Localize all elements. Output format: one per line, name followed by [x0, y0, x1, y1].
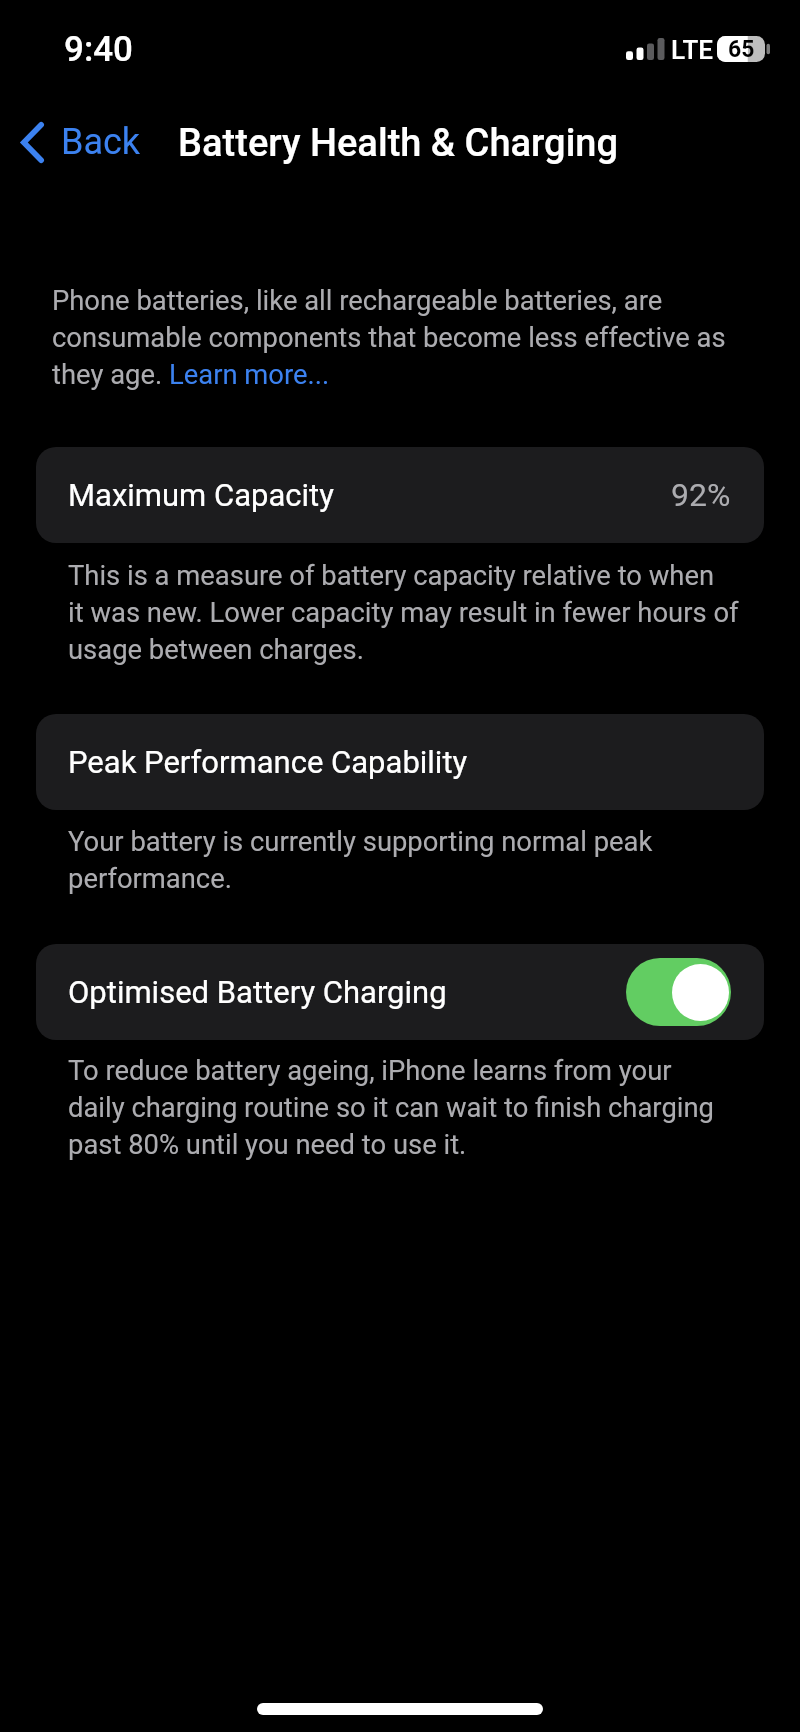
button[interactable]: Back	[0, 121, 151, 163]
button[interactable]: Maximum Capacity	[36, 447, 764, 543]
staticText: 65	[728, 36, 755, 62]
staticText: Back	[61, 121, 141, 163]
staticText: Your battery is currently supporting nor…	[68, 826, 653, 895]
staticText: To reduce battery ageing, iPhone learns …	[68, 1055, 714, 1161]
button[interactable]: Optimised Battery Charging toggle	[626, 958, 731, 1026]
staticText: Phone batteries, like all rechargeable b…	[52, 285, 726, 391]
staticText: 92%	[671, 476, 731, 514]
button[interactable]: Peak Performance Capability	[36, 714, 764, 810]
button[interactable]: Optimised Battery Charging	[36, 944, 764, 1040]
staticText: This is a measure of battery capacity re…	[68, 560, 739, 666]
staticText: Peak Performance Capability	[68, 744, 468, 780]
staticText: LTE	[671, 35, 713, 65]
staticText: Optimised Battery Charging	[68, 974, 447, 1010]
staticText: Battery Health & Charging	[178, 121, 619, 166]
staticText: 9:40	[64, 29, 133, 70]
staticText: Maximum Capacity	[68, 477, 334, 513]
